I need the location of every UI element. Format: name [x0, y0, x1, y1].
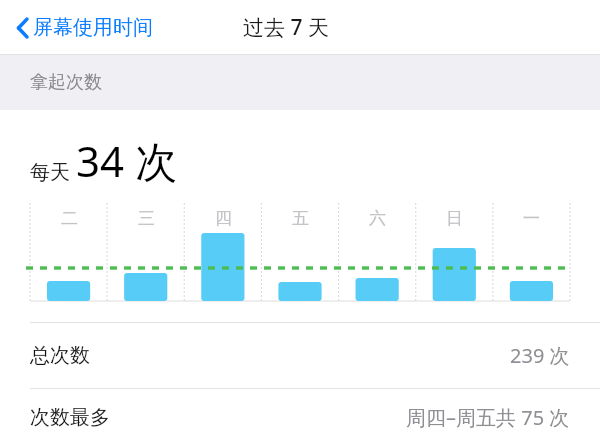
staticText: 34 次 [76, 132, 177, 189]
button[interactable]: Back [12, 9, 157, 46]
staticText: 屏幕使用时间 [33, 15, 153, 40]
staticText: 三 [138, 208, 155, 229]
staticText: 239 次 [510, 342, 570, 369]
other: Back [16, 16, 30, 40]
staticText: 周四–周五共 75 次 [406, 404, 570, 431]
staticText: 过去 7 天 [243, 13, 329, 42]
staticText: 四 [215, 208, 232, 229]
staticText: 一 [523, 208, 540, 229]
staticText: 日 [446, 208, 463, 229]
staticText: 总次数 [30, 343, 90, 368]
staticText: 拿起次数 [30, 71, 102, 94]
button[interactable]: 总次数 [0, 323, 600, 388]
button[interactable]: 次数最多 [0, 389, 600, 445]
staticText: 二 [61, 208, 78, 229]
staticText: 五 [292, 208, 309, 229]
staticText: 六 [369, 208, 386, 229]
staticText: 每天 [30, 160, 70, 185]
staticText: 次数最多 [30, 405, 110, 430]
